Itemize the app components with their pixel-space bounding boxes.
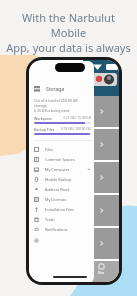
- staticText: Installation Files: [45, 207, 74, 212]
- staticText: My Licenses: [45, 197, 67, 202]
- button[interactable]: [83, 162, 119, 193]
- button[interactable]: Profile: [92, 73, 117, 86]
- button[interactable]: [83, 228, 119, 259]
- staticText: Mobile Backup: [45, 177, 72, 182]
- button[interactable]: My Computer: [34, 164, 91, 174]
- button[interactable]: Trash: [34, 214, 91, 224]
- staticText: Files: [45, 147, 53, 152]
- staticText: Storage: [46, 86, 65, 93]
- button[interactable]: [83, 129, 119, 160]
- button[interactable]: [83, 195, 119, 226]
- button[interactable]: Address Book: [34, 184, 91, 194]
- button[interactable]: Mobile Backup: [34, 174, 91, 184]
- staticText: Common Spaces: [45, 157, 75, 162]
- button[interactable]: Notifications: [34, 224, 91, 234]
- staticText: Files: [98, 271, 105, 275]
- button[interactable]: Files: [34, 144, 91, 154]
- staticText: Workspace: [34, 116, 53, 121]
- button[interactable]: Settings: [34, 236, 39, 245]
- staticText: My Computer: [45, 167, 70, 172]
- button[interactable]: Installation Files: [34, 204, 91, 214]
- staticText: Trash: [45, 217, 55, 222]
- staticText: 3.21 GB / 15.00 GB: [63, 116, 91, 120]
- staticText: Notifications: [45, 227, 68, 232]
- staticText: Out of a total of 250.00 GB storage, 6.3…: [34, 98, 91, 113]
- button[interactable]: My Licenses: [34, 194, 91, 204]
- button[interactable]: Common Spaces: [34, 154, 91, 164]
- staticText: Backup Files: [34, 127, 55, 132]
- staticText: Address Book: [45, 187, 70, 192]
- button[interactable]: Files tab: [83, 263, 119, 275]
- button[interactable]: Storage: [34, 83, 91, 95]
- button[interactable]: [83, 96, 119, 127]
- staticText: With the Narbulut Mobile App, your data …: [6, 10, 131, 70]
- staticText: 3.03 GB / 200.00 GB: [61, 127, 91, 131]
